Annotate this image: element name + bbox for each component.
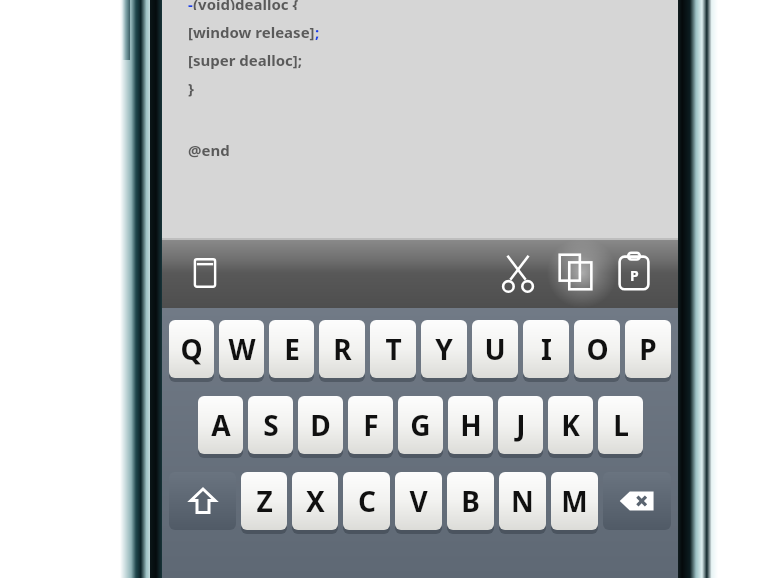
staticText: [super dealloc]; [188,50,303,70]
staticText: F [363,406,379,444]
button[interactable]: X [292,472,338,530]
staticText: } [188,78,194,98]
button[interactable]: I [523,320,569,378]
staticText: ; [315,22,320,42]
button[interactable]: Y [421,320,467,378]
button[interactable]: R [319,320,365,378]
button[interactable]: U [472,320,518,378]
staticText: R [333,330,352,368]
staticText: V [409,482,428,520]
button[interactable]: D [298,396,343,454]
button[interactable]: O [574,320,620,378]
staticText: K [561,406,580,444]
button[interactable]: M [551,472,598,530]
staticText: @end [188,140,230,160]
button[interactable]: Cut [494,248,542,296]
staticText: T [385,330,402,368]
staticText: M [561,482,588,520]
button[interactable]: C [343,472,390,530]
staticText: A [211,406,231,444]
button[interactable]: Document [182,250,228,296]
button[interactable]: Shift [169,472,236,530]
staticText: P [639,330,657,368]
staticText: N [511,482,534,520]
button[interactable]: Paste [610,248,658,296]
button[interactable]: L [598,396,643,454]
button[interactable]: J [498,396,543,454]
button[interactable]: V [395,472,442,530]
button[interactable]: W [219,320,264,378]
staticText: P [630,266,639,285]
staticText: E [284,330,300,368]
staticText: Z [256,482,273,520]
button[interactable]: S [248,396,293,454]
staticText: H [460,406,482,444]
staticText: U [484,330,506,368]
button[interactable]: B [447,472,494,530]
button[interactable]: G [398,396,443,454]
button[interactable]: A [198,396,243,454]
staticText: I [541,330,552,368]
staticText: J [516,406,526,444]
staticText: D [310,406,331,444]
staticText: Q [180,330,203,368]
button[interactable]: F [348,396,393,454]
staticText: W [228,330,256,368]
staticText: Y [435,330,453,368]
staticText: B [461,482,480,520]
button[interactable]: Z [241,472,287,530]
staticText: G [410,406,431,444]
button[interactable]: Backspace [603,472,671,530]
button[interactable]: Copy [552,248,600,296]
staticText: (void)dealloc { [193,0,299,10]
button[interactable]: N [499,472,546,530]
button[interactable]: T [370,320,416,378]
button[interactable]: E [269,320,314,378]
staticText: O [586,330,609,368]
staticText: - [188,0,193,10]
staticText: C [358,482,376,520]
staticText: L [613,406,629,444]
staticText: S [263,406,279,444]
staticText: X [306,482,325,520]
staticText: [window release] [188,22,315,42]
button[interactable]: H [448,396,493,454]
button[interactable]: P [625,320,671,378]
button[interactable]: Q [169,320,214,378]
button[interactable]: K [548,396,593,454]
